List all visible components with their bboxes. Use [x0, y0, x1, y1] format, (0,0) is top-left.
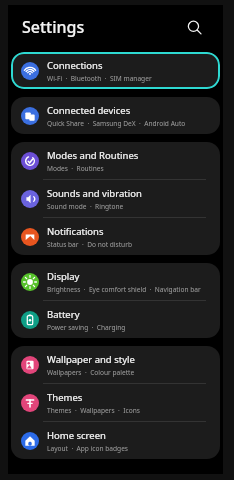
button[interactable]: Home screen [11, 422, 220, 459]
staticText: Themes [47, 391, 83, 404]
button[interactable]: Display [11, 263, 220, 300]
staticText: Wallpaper and style [47, 353, 135, 366]
staticText: Sound mode · Ringtone [47, 202, 124, 211]
staticText: Brightness · Eye comfort shield · Naviga… [47, 285, 201, 294]
staticText: Display [47, 270, 80, 283]
staticText: Connected devices [47, 104, 131, 117]
staticText: Sounds and vibration [47, 187, 142, 200]
staticText: Settings [22, 16, 85, 38]
button[interactable]: Battery [11, 301, 220, 338]
button[interactable]: Sounds and vibration [11, 180, 220, 217]
staticText: Modes · Routines [47, 164, 104, 173]
staticText: Quick Share · Samsung DeX · Android Auto [47, 119, 186, 128]
staticText: Themes · Wallpapers · Icons [47, 406, 140, 415]
staticText: Home screen [47, 429, 106, 442]
staticText: Wi-Fi · Bluetooth · SIM manager [47, 74, 152, 83]
button[interactable]: Search [181, 14, 207, 40]
staticText: Modes and Routines [47, 149, 139, 162]
staticText: Layout · App icon badges [47, 444, 129, 453]
button[interactable]: Modes and Routines [11, 142, 220, 179]
button[interactable]: Themes [11, 384, 220, 421]
staticText: Connections [47, 59, 103, 72]
button[interactable]: Notifications [11, 218, 220, 255]
button[interactable]: Connections [11, 52, 220, 89]
staticText: Power saving · Charging [47, 323, 126, 332]
staticText: Wallpapers · Colour palette [47, 368, 135, 377]
staticText: Status bar · Do not disturb [47, 240, 132, 249]
staticText: Notifications [47, 225, 104, 238]
staticText: Battery [47, 308, 80, 321]
button[interactable]: Connected devices [11, 97, 220, 134]
button[interactable]: Wallpaper and style [11, 346, 220, 383]
